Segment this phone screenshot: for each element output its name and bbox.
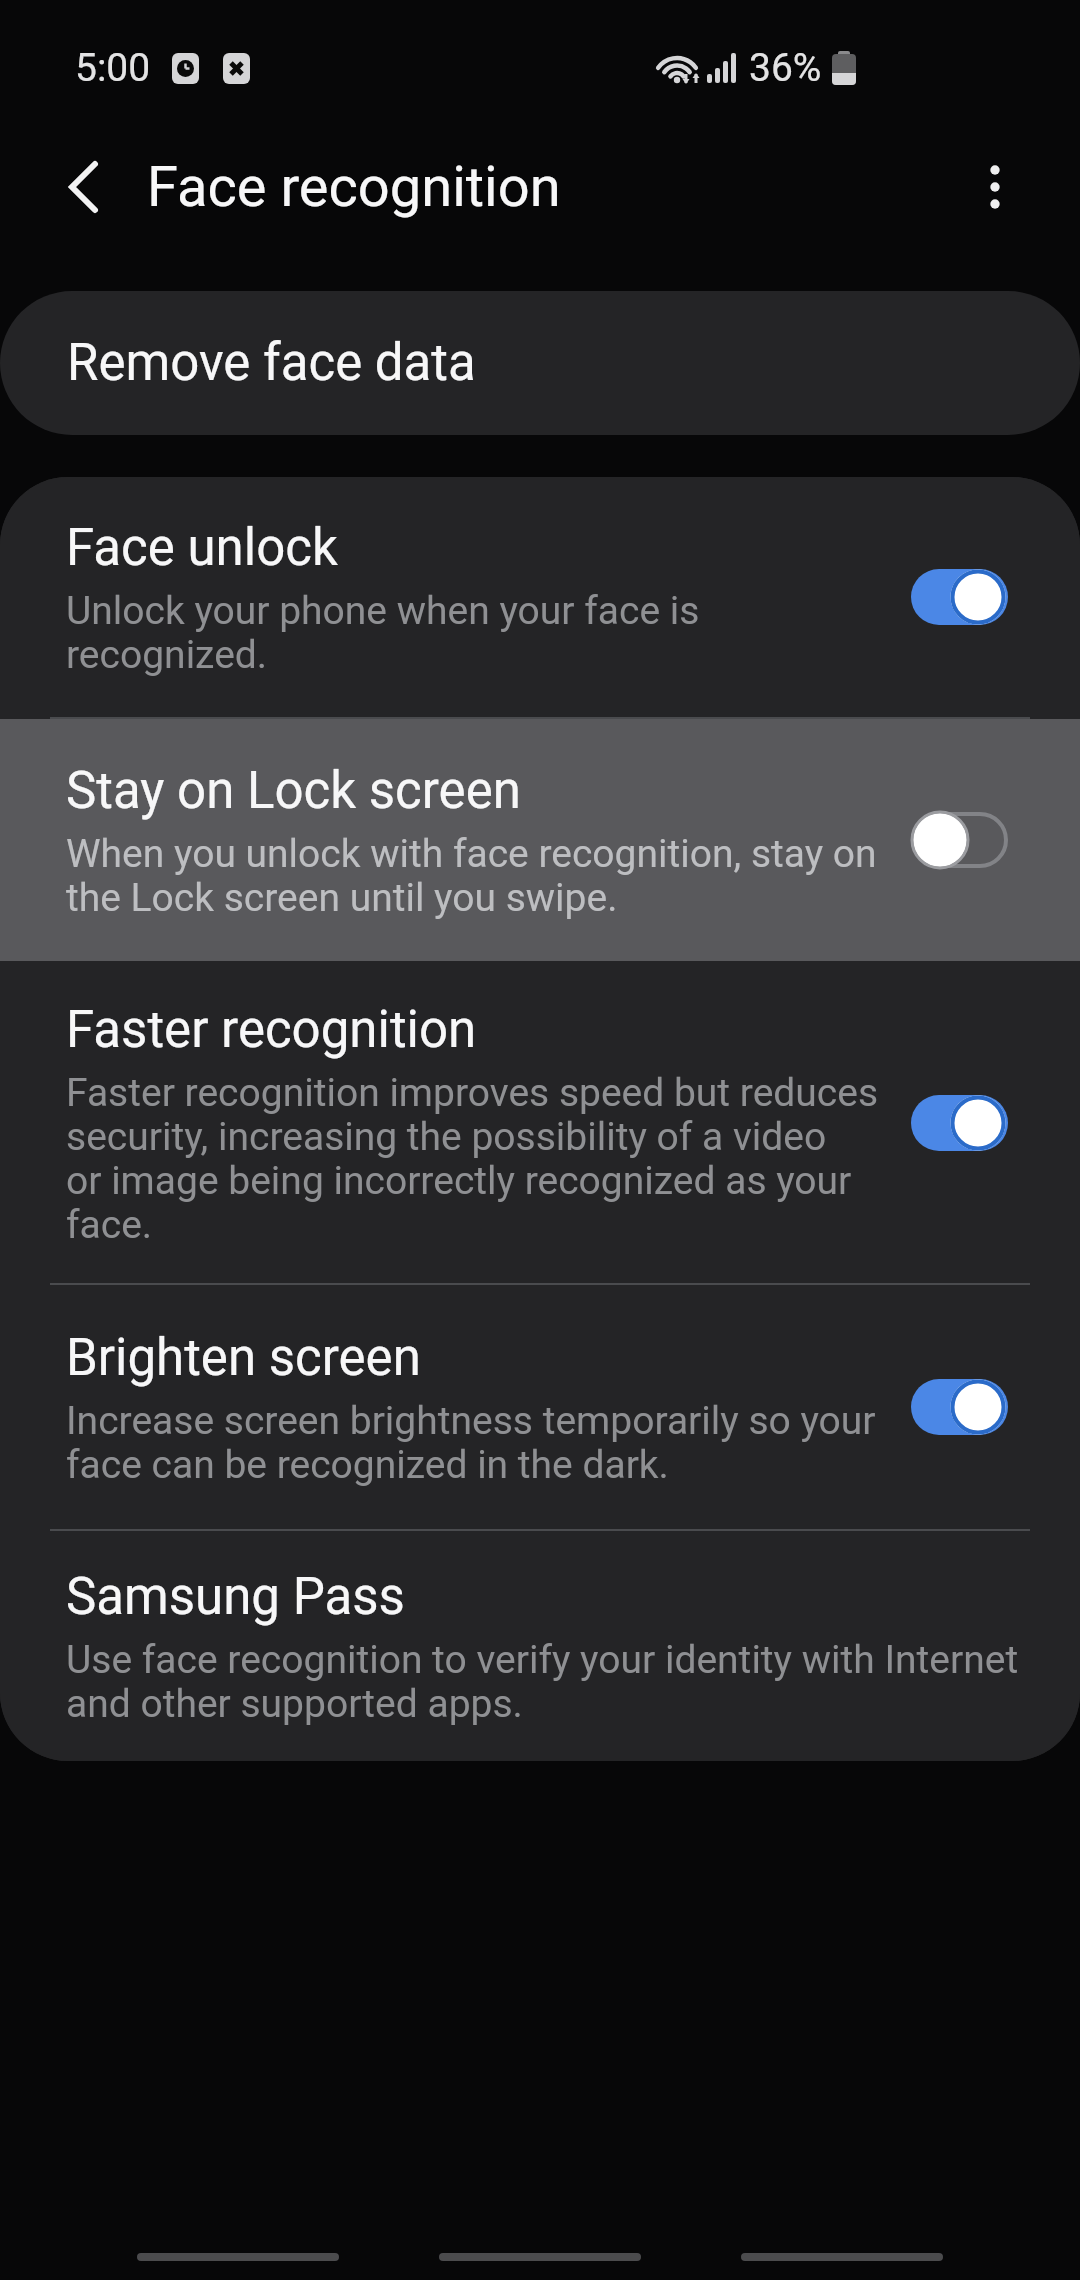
staticText: Faster recognition <box>66 1000 477 1060</box>
staticText: Unlock your phone when your face is reco… <box>66 588 700 677</box>
button[interactable]: Faster recognition <box>0 963 1080 1283</box>
button[interactable]: Stay on Lock screen <box>0 719 1080 961</box>
button[interactable] <box>970 162 1020 212</box>
button[interactable]: Brighten screen <box>0 1285 1080 1529</box>
staticText: Use face recognition to verify your iden… <box>66 1637 1019 1726</box>
staticText: Samsung Pass <box>66 1567 405 1627</box>
button[interactable]: Face unlock <box>0 477 1080 717</box>
staticText: 36% <box>749 45 822 91</box>
button[interactable]: Samsung Pass <box>0 1531 1080 1761</box>
staticText: Face recognition <box>147 154 561 220</box>
button[interactable] <box>55 159 111 215</box>
staticText: When you unlock with face recognition, s… <box>66 831 877 920</box>
staticText: 5:00 <box>75 45 151 91</box>
button[interactable] <box>137 2253 339 2261</box>
staticText: Remove face data <box>67 333 476 393</box>
staticText: Brighten screen <box>66 1328 421 1388</box>
staticText: Stay on Lock screen <box>66 761 521 821</box>
staticText: Increase screen brightness temporarily s… <box>66 1398 876 1487</box>
staticText: Faster recognition improves speed but re… <box>66 1070 879 1247</box>
button[interactable] <box>439 2253 641 2261</box>
button[interactable] <box>741 2253 943 2261</box>
staticText: Face unlock <box>66 518 338 578</box>
button[interactable]: Remove face data <box>0 291 1080 435</box>
